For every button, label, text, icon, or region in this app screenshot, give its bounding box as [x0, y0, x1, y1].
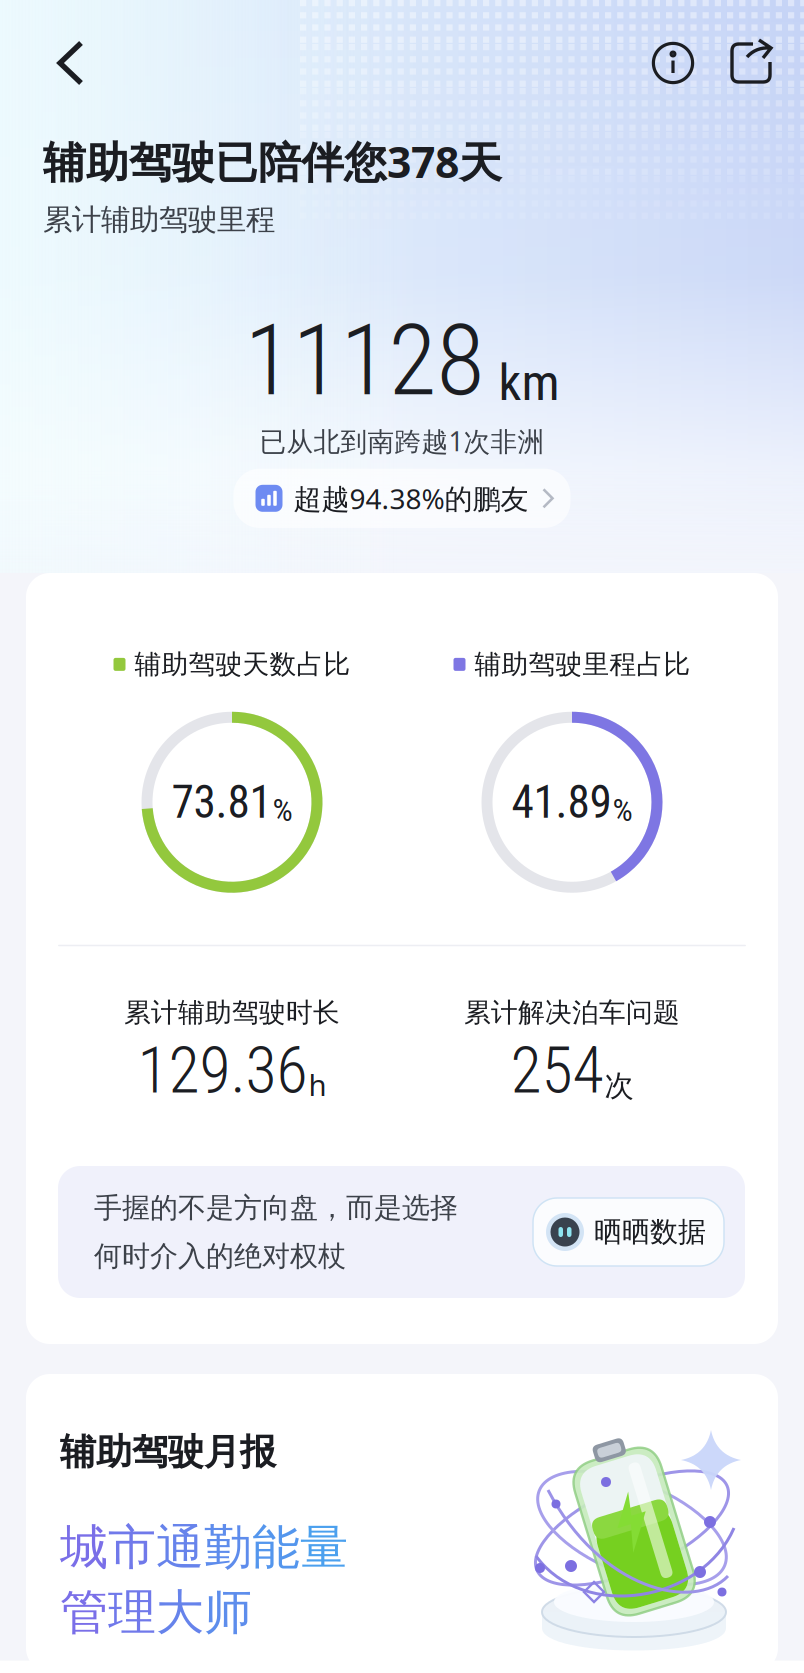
staticText: 已从北到南跨越1次非洲	[259, 423, 544, 459]
staticText: 累计解决泊车问题	[464, 996, 680, 1029]
staticText: 手握的不是方向盘，而是选择	[94, 1191, 458, 1225]
staticText: 辅助驾驶里程占比	[474, 648, 690, 681]
staticText: 城	[60, 1518, 108, 1577]
staticText: 129.36	[137, 1033, 307, 1108]
staticText: 量	[300, 1518, 348, 1577]
staticText: km	[498, 353, 559, 412]
button[interactable]: Info	[639, 29, 707, 97]
button[interactable]: Back	[41, 29, 109, 97]
staticText: 通	[156, 1518, 204, 1577]
staticText: 管	[60, 1583, 108, 1642]
button[interactable]: 超越94.38%的鹏友	[233, 469, 570, 528]
staticText: %	[272, 791, 292, 829]
staticText: 辅助驾驶天数占比	[134, 648, 350, 681]
staticText: 73.81	[171, 776, 271, 829]
staticText: %	[612, 791, 632, 829]
staticText: 勤	[204, 1518, 252, 1577]
staticText: 累计辅助驾驶时长	[124, 996, 340, 1029]
button[interactable]: Share	[717, 29, 785, 97]
staticText: 能	[252, 1518, 300, 1577]
staticText: 晒晒数据	[594, 1215, 706, 1249]
staticText: 254	[510, 1033, 603, 1108]
staticText: 理	[108, 1583, 156, 1642]
staticText: 11128	[244, 303, 484, 418]
staticText: h	[308, 1065, 326, 1104]
staticText: 市	[108, 1518, 156, 1577]
staticText: 超越94.38%的鹏友	[293, 480, 528, 517]
staticText: 辅助驾驶已陪伴您378天	[43, 133, 502, 190]
button[interactable]: 晒晒数据	[533, 1198, 724, 1266]
staticText: 何时介入的绝对权杖	[94, 1239, 346, 1273]
staticText: 师	[204, 1583, 252, 1642]
staticText: 41.89	[511, 776, 611, 829]
staticText: 累计辅助驾驶里程	[43, 202, 275, 238]
staticText: 大	[156, 1583, 204, 1642]
staticText: 次	[604, 1068, 633, 1104]
staticText: 辅助驾驶月报	[60, 1430, 276, 1474]
